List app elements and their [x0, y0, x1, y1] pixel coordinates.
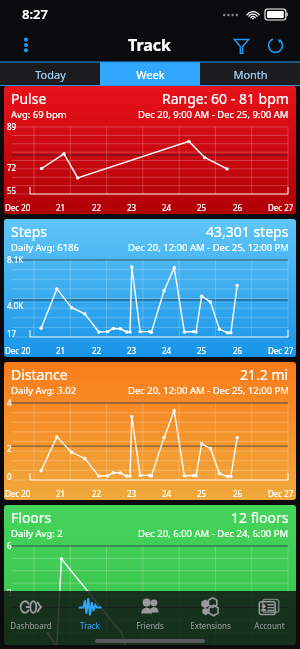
staticText: 25 — [197, 202, 207, 213]
staticText: 3 — [7, 587, 12, 598]
staticText: 24 — [162, 202, 172, 213]
staticText: Dec 20 — [5, 488, 31, 499]
button[interactable]: Account — [240, 596, 298, 631]
button[interactable]: Filter — [224, 28, 258, 62]
staticText: 8:27 — [22, 5, 48, 23]
button[interactable]: Refresh — [258, 28, 292, 62]
staticText: Extensions — [190, 620, 231, 631]
staticText: 21 — [56, 345, 66, 356]
staticText: Dec 20, 12:00 AM - Dec 25, 12:00 PM — [128, 241, 289, 254]
staticText: 23 — [127, 202, 137, 213]
staticText: 23 — [127, 488, 137, 499]
button[interactable]: Steps — [4, 219, 296, 357]
staticText: 22 — [92, 488, 102, 499]
staticText: Dec 27 — [268, 345, 294, 356]
staticText: Month — [233, 67, 268, 82]
staticText: Dec 20, 6:00 AM - Dec 24, 6:00 PM — [138, 527, 289, 540]
staticText: 23 — [127, 345, 137, 356]
staticText: Track — [80, 620, 100, 631]
button[interactable]: Month — [200, 62, 300, 86]
staticText: 43,301 steps — [206, 222, 289, 241]
button[interactable]: Track — [61, 596, 119, 631]
staticText: Dec 27 — [268, 202, 294, 213]
staticText: 26 — [233, 202, 243, 213]
staticText: 4 — [7, 397, 12, 408]
staticText: Today — [35, 67, 66, 82]
staticText: Daily Avg: 6186 — [11, 241, 79, 254]
staticText: 22 — [92, 345, 102, 356]
staticText: Week — [136, 67, 165, 82]
staticText: 21.2 mi — [240, 365, 289, 384]
staticText: Daily Avg: 3.02 — [11, 384, 77, 397]
staticText: 22 — [92, 202, 102, 213]
staticText: Dec 20 — [5, 202, 31, 213]
staticText: Account — [254, 620, 285, 631]
button[interactable]: Extensions — [181, 596, 239, 631]
button[interactable]: Week — [100, 62, 200, 86]
staticText: 17 — [7, 328, 17, 339]
button[interactable]: Pulse — [4, 86, 296, 214]
staticText: 6 — [7, 540, 12, 551]
staticText: 0 — [7, 471, 12, 482]
button[interactable]: Friends — [121, 596, 179, 631]
staticText: 72 — [7, 162, 17, 173]
staticText: Dashboard — [10, 620, 52, 631]
staticText: 2 — [7, 443, 12, 454]
staticText: Dec 27 — [268, 488, 294, 499]
staticText: Dec 20, 9:00 AM - Dec 25, 9:00 AM — [138, 108, 289, 121]
staticText: Dec 20, 12:00 AM - Dec 25, 12:00 PM — [128, 384, 289, 397]
button[interactable]: Today — [0, 62, 100, 86]
staticText: Daily Avg: 2 — [11, 527, 63, 540]
staticText: 12 floors — [231, 508, 289, 527]
staticText: 25 — [197, 345, 207, 356]
staticText: 26 — [233, 488, 243, 499]
button[interactable]: More options — [8, 28, 44, 62]
staticText: 26 — [233, 345, 243, 356]
staticText: Pulse — [11, 89, 47, 108]
staticText: Avg: 69 bpm — [11, 108, 67, 121]
staticText: Friends — [136, 620, 164, 631]
staticText: 21 — [56, 202, 66, 213]
staticText: Steps — [11, 222, 47, 241]
button[interactable]: Floors — [4, 505, 296, 645]
staticText: 8.1K — [7, 254, 24, 265]
button[interactable]: Distance — [4, 362, 296, 500]
staticText: Track — [128, 34, 172, 56]
staticText: 55 — [7, 185, 17, 196]
staticText: 24 — [162, 345, 172, 356]
staticText: Distance — [11, 365, 68, 384]
staticText: 24 — [162, 488, 172, 499]
staticText: 89 — [7, 121, 17, 132]
staticText: Dec 20 — [5, 345, 31, 356]
staticText: 21 — [56, 488, 66, 499]
staticText: 4.0K — [7, 300, 24, 311]
staticText: Floors — [11, 508, 52, 527]
staticText: Range: 60 - 81 bpm — [162, 89, 289, 108]
button[interactable]: Dashboard — [2, 596, 60, 631]
staticText: 25 — [197, 488, 207, 499]
